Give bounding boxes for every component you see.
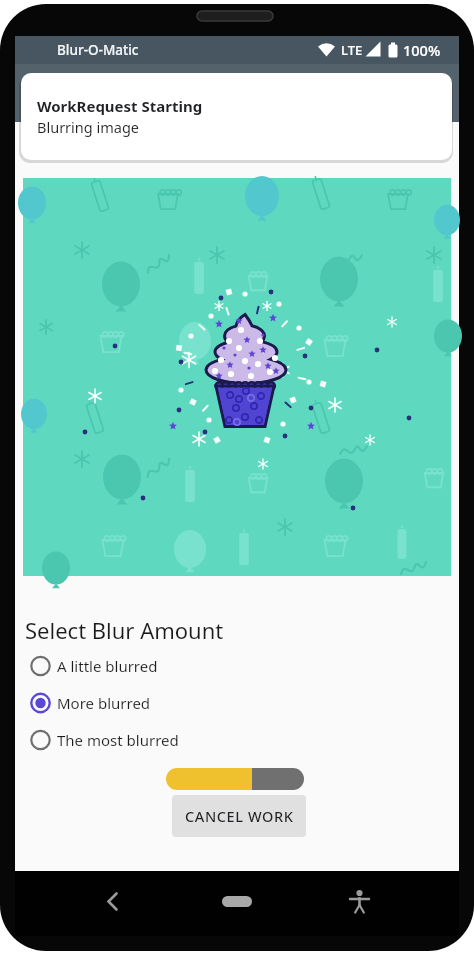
staticText: A little blurred (57, 656, 158, 676)
staticText: More blurred (57, 693, 151, 713)
staticText: The most blurred (57, 730, 179, 750)
staticText: 100% (403, 40, 441, 60)
button[interactable]: CANCEL WORK (172, 795, 306, 837)
staticText: LTE (341, 41, 363, 59)
staticText: Blur-O-Matic (57, 41, 139, 59)
button[interactable]: A little blurred (25, 650, 285, 682)
button[interactable] (163, 871, 311, 936)
button[interactable]: The most blurred (25, 724, 285, 756)
staticText: Select Blur Amount (25, 615, 224, 645)
button[interactable]: WorkRequest Starting (21, 73, 452, 160)
staticText: Blurring image (37, 117, 140, 137)
staticText: CANCEL WORK (185, 806, 294, 826)
staticText: WorkRequest Starting (37, 96, 203, 116)
button[interactable] (15, 871, 163, 936)
button[interactable]: More blurred (25, 687, 285, 719)
button[interactable] (311, 871, 459, 936)
